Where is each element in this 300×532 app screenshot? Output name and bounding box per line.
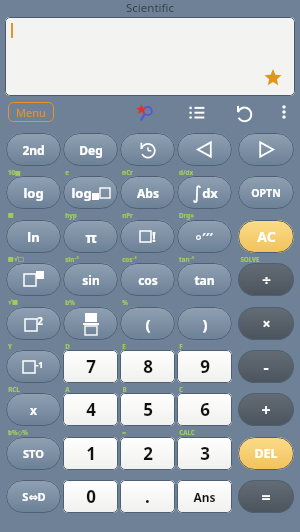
button[interactable]: History list: [185, 101, 209, 125]
button[interactable]: [5, 17, 295, 96]
staticText: 0: [86, 485, 96, 508]
staticText: B: [122, 385, 127, 393]
staticText: =: [261, 486, 271, 508]
staticText: %: [122, 298, 128, 306]
button[interactable]: DEL: [238, 437, 294, 470]
button[interactable]: +: [238, 393, 294, 426]
staticText: ÷: [262, 270, 271, 290]
staticText: nCr: [122, 168, 133, 176]
staticText: DEL: [254, 445, 278, 462]
staticText: -1: [35, 358, 44, 370]
staticText: hyp: [65, 211, 77, 219]
button[interactable]: (: [120, 307, 175, 340]
staticText: Abs: [137, 185, 159, 201]
button[interactable]: cos: [120, 263, 175, 296]
button[interactable]: log: [6, 176, 61, 209]
button[interactable]: Move left: [177, 133, 232, 166]
staticText: Ans: [193, 489, 216, 505]
staticText: log: [23, 184, 44, 202]
button[interactable]: Logarithm base: [63, 176, 118, 209]
button[interactable]: Abs: [120, 176, 175, 209]
button[interactable]: OPTN: [238, 176, 294, 209]
staticText: Menu: [16, 105, 46, 120]
staticText: 4: [86, 398, 96, 421]
button[interactable]: More options: [273, 101, 295, 123]
button[interactable]: Factorial: [120, 220, 175, 253]
staticText: √■: [8, 298, 18, 305]
button[interactable]: 8: [120, 350, 175, 383]
button[interactable]: 5: [120, 393, 175, 426]
staticText: tan⁻¹: [179, 255, 194, 263]
staticText: Deg: [79, 142, 103, 158]
staticText: (: [145, 314, 151, 334]
button[interactable]: Fraction: [63, 307, 118, 340]
staticText: ln: [27, 228, 40, 246]
staticText: cos⁻¹: [122, 255, 137, 263]
button[interactable]: Square: [6, 307, 61, 340]
staticText: sin⁻¹: [65, 255, 79, 263]
staticText: nPr: [122, 211, 133, 219]
button[interactable]: History: [120, 133, 175, 166]
staticText: ∫: [192, 182, 202, 203]
staticText: 9: [200, 355, 210, 378]
button[interactable]: =: [238, 480, 294, 513]
staticText: C: [179, 385, 183, 393]
button[interactable]: 6: [177, 393, 232, 426]
staticText: cos: [138, 272, 158, 288]
staticText: Scientific: [126, 0, 174, 16]
button[interactable]: Move right: [238, 133, 294, 166]
button[interactable]: 9: [177, 350, 232, 383]
staticText: ′′′: [202, 229, 213, 245]
button[interactable]: ): [177, 307, 232, 340]
staticText: log: [71, 184, 92, 202]
button[interactable]: Search favourites: [133, 101, 157, 125]
staticText: 5: [143, 398, 153, 421]
button[interactable]: Ans: [177, 480, 232, 513]
button[interactable]: Power: [6, 263, 61, 296]
button[interactable]: 1: [63, 437, 118, 470]
staticText: ■√□: [8, 255, 24, 262]
button[interactable]: .: [120, 480, 175, 513]
button[interactable]: -: [238, 350, 294, 383]
button[interactable]: ÷: [238, 263, 294, 296]
staticText: 2: [37, 314, 43, 328]
button[interactable]: x: [6, 393, 61, 426]
button[interactable]: AC: [238, 220, 294, 253]
button[interactable]: sin: [63, 263, 118, 296]
staticText: =: [122, 428, 126, 436]
staticText: 10■: [8, 168, 21, 176]
staticText: sin: [82, 272, 100, 288]
button[interactable]: ×: [238, 307, 294, 340]
button[interactable]: Degrees minutes seconds: [177, 220, 232, 253]
staticText: b%: [65, 298, 75, 306]
staticText: STO: [23, 446, 44, 461]
staticText: ): [202, 314, 208, 334]
button[interactable]: Deg: [63, 133, 118, 166]
button[interactable]: 2: [120, 437, 175, 470]
button[interactable]: STO: [6, 437, 61, 470]
button[interactable]: ln: [6, 220, 61, 253]
staticText: 7: [86, 355, 96, 378]
staticText: 1: [86, 442, 96, 465]
staticText: dx: [202, 184, 218, 202]
staticText: +: [261, 399, 271, 421]
staticText: x: [30, 402, 37, 418]
button[interactable]: tan: [177, 263, 232, 296]
staticText: Drg»: [179, 211, 194, 219]
button[interactable]: 3: [177, 437, 232, 470]
button[interactable]: Reciprocal: [6, 350, 61, 383]
button[interactable]: S⇔D: [6, 480, 61, 513]
button[interactable]: Undo: [231, 100, 257, 126]
button[interactable]: Menu: [8, 102, 54, 122]
button[interactable]: 7: [63, 350, 118, 383]
staticText: 8: [143, 355, 153, 378]
staticText: π: [85, 227, 97, 247]
button[interactable]: 2nd: [6, 133, 61, 166]
button[interactable]: 0: [63, 480, 118, 513]
button[interactable]: 4: [63, 393, 118, 426]
button[interactable]: Integral: [177, 176, 232, 209]
button[interactable]: π: [63, 220, 118, 253]
staticText: .: [145, 485, 150, 508]
staticText: AC: [257, 227, 276, 246]
staticText: e: [65, 168, 69, 176]
